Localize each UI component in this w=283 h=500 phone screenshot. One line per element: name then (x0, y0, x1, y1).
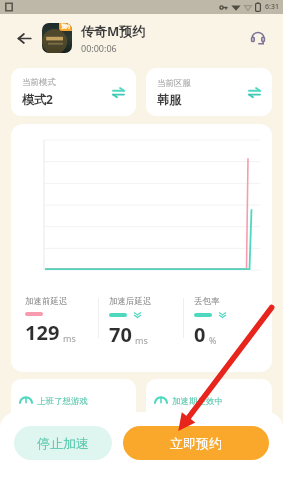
button[interactable]: 上班了想游戏 (11, 379, 136, 423)
staticText: 丢包率 (194, 296, 220, 307)
staticText: 当前区服 (157, 78, 191, 89)
staticText: ms (135, 334, 148, 346)
button[interactable]: 加速期生效中 (146, 379, 272, 423)
staticText: 立即预约 (170, 435, 222, 451)
staticText: 00:00:06 (81, 42, 117, 54)
staticText: 0 (194, 321, 206, 348)
staticText: 上班了想游戏 (37, 396, 88, 407)
staticText: 模式2 (22, 91, 53, 107)
button[interactable]: Support (243, 23, 273, 53)
staticText: 129 (25, 319, 60, 346)
staticText: 加速后延迟 (109, 296, 152, 307)
staticText: 传奇M预约 (81, 22, 146, 40)
button[interactable]: 当前区服 (146, 68, 272, 116)
button[interactable]: Back (10, 24, 38, 52)
staticText: 停止加速 (37, 435, 89, 451)
button[interactable]: 立即预约 (123, 426, 269, 460)
staticText: 加速期生效中 (172, 396, 223, 407)
staticText: 韩服 (157, 92, 181, 107)
button[interactable]: 当前模式 (11, 68, 136, 116)
staticText: 6:31 (265, 2, 279, 12)
staticText: 70 (109, 321, 132, 348)
staticText: 预约 (61, 24, 70, 30)
staticText: ms (63, 332, 76, 344)
staticText: 加速前延迟 (25, 296, 68, 307)
staticText: 当前模式 (22, 77, 56, 88)
button[interactable]: 停止加速 (14, 426, 112, 460)
staticText: % (209, 334, 217, 346)
